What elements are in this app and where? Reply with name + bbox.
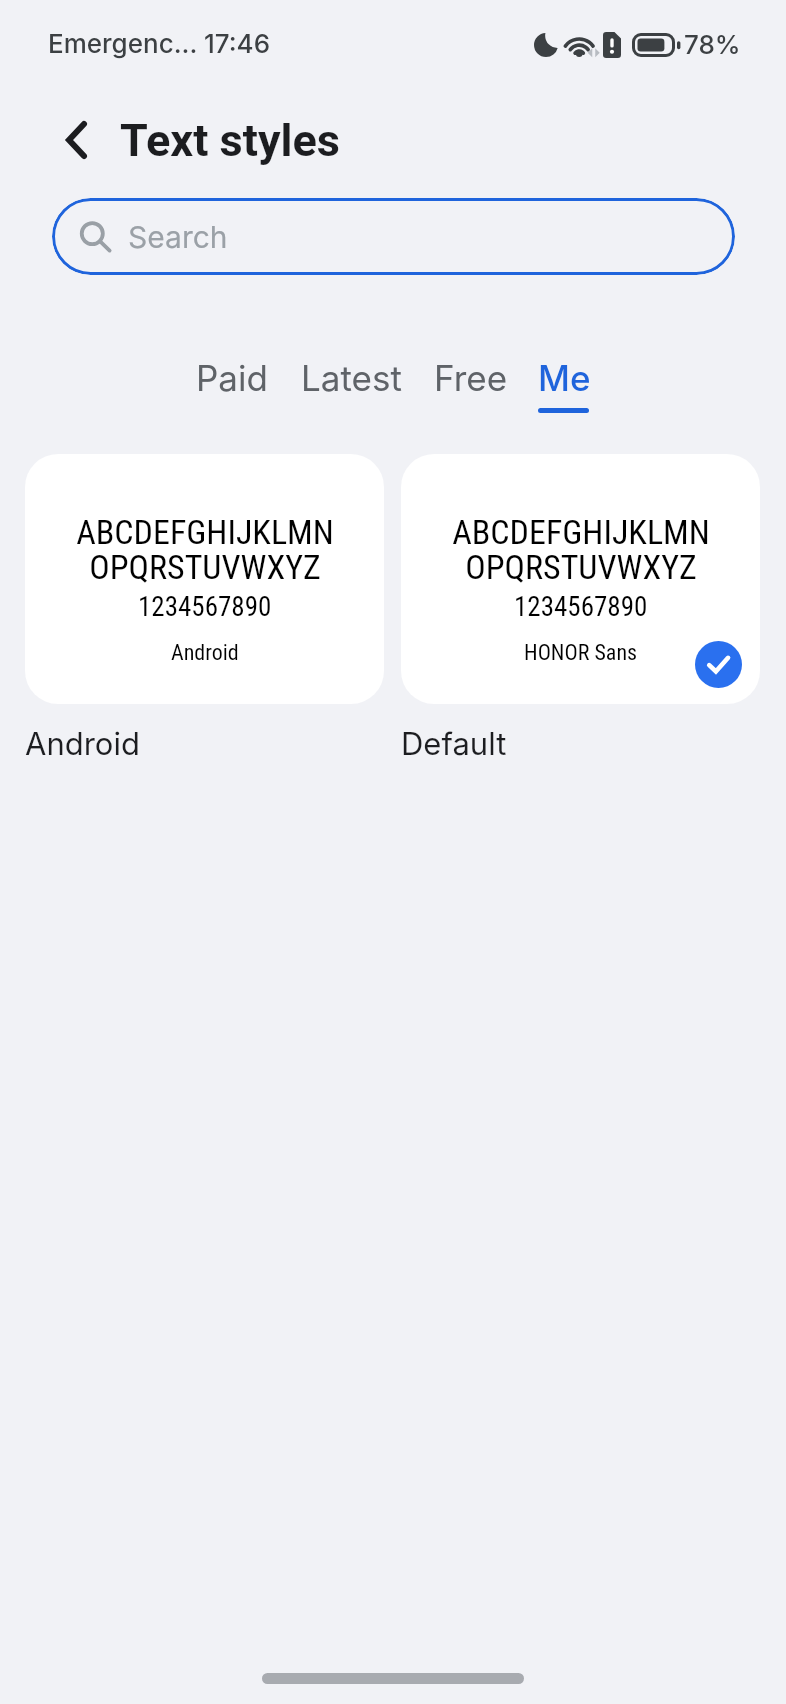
button[interactable]: Paid [188,352,276,422]
staticText: Text styles [120,114,340,167]
staticText: 1234567890 [514,591,648,623]
staticText: Me [538,357,591,399]
staticText: HONOR Sans [524,640,638,666]
staticText: ABCDEFGHIJKLMN OPQRSTUVWXYZ [76,512,334,587]
staticText: Emergenc... 17:46 [48,28,271,59]
button[interactable]: Back [54,118,98,162]
staticText: 1234567890 [138,591,272,623]
staticText: ABCDEFGHIJKLMN OPQRSTUVWXYZ [452,512,710,587]
staticText: Search [128,219,228,255]
button[interactable]: Free [424,352,517,422]
button[interactable]: ABCDEFGHIJKLMN OPQRSTUVWXYZ [401,454,760,704]
button[interactable]: Search [52,198,735,275]
staticText: Default [401,725,507,763]
button[interactable]: Selected [695,641,742,688]
staticText: Latest [301,357,402,399]
staticText: Android [171,640,239,666]
staticText: 78% [684,29,741,60]
staticText: Free [434,357,508,399]
staticText: Android [25,725,140,763]
button[interactable]: Latest [291,352,412,422]
button[interactable]: Me [528,352,601,422]
staticText: Paid [196,357,268,399]
button[interactable]: ABCDEFGHIJKLMN OPQRSTUVWXYZ [25,454,384,704]
